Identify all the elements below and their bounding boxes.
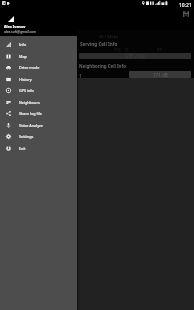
staticText: Neighboring Cell Info	[79, 63, 126, 69]
button[interactable]: History	[0, 73, 77, 85]
staticText: Info	[19, 42, 27, 47]
staticText: Alex Ivanov	[4, 24, 26, 29]
staticText: Drive mode	[19, 65, 40, 70]
button[interactable]: Save	[180, 8, 191, 19]
button[interactable]: Map	[0, 50, 77, 62]
staticText: 1	[79, 73, 82, 80]
staticText: alex.soft@gmail.com	[4, 29, 37, 33]
button[interactable]: 171 dB	[129, 71, 191, 78]
staticText: Voice Analyze	[19, 123, 43, 128]
button[interactable]: Exit	[0, 142, 77, 154]
button[interactable]: Neighbours	[0, 96, 77, 108]
staticText: Serving Cell Info	[80, 41, 118, 47]
staticText: RX: --	[157, 47, 167, 53]
button[interactable]: Share log file	[0, 107, 77, 119]
button[interactable]: Voice Analyze	[0, 119, 77, 131]
button[interactable]: Info	[0, 38, 77, 50]
staticText: PSC: 10	[114, 47, 129, 53]
staticText: Neighbours	[19, 100, 40, 105]
staticText: GPS info	[19, 88, 34, 93]
staticText: Map	[19, 54, 27, 59]
button[interactable]: Settings	[0, 130, 77, 142]
staticText: 10:21	[179, 2, 192, 9]
staticText: Settings	[19, 134, 34, 139]
staticText: Share log file	[19, 111, 42, 116]
button[interactable]: Drive mode	[0, 61, 77, 73]
staticText: 171 dB	[153, 72, 168, 78]
staticText: LTE 2100	[126, 53, 145, 59]
staticText: 3k / 34kps	[99, 34, 119, 39]
button[interactable]: GPS info	[0, 84, 77, 96]
staticText: Exit	[19, 146, 26, 151]
staticText: History	[19, 77, 32, 82]
